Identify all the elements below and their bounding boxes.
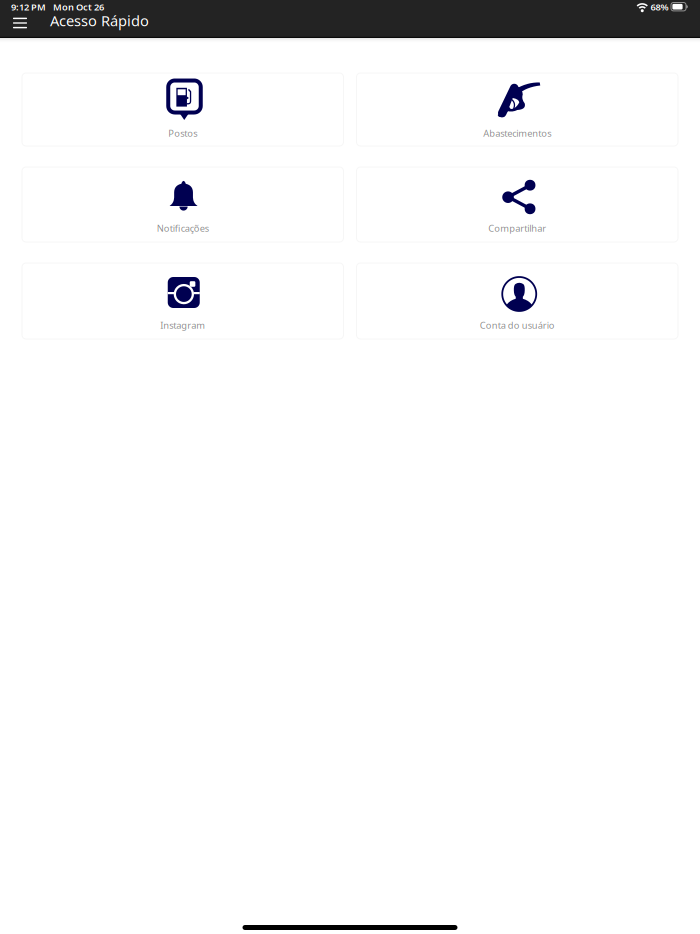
button[interactable]: Compartilhar [356, 167, 678, 242]
staticText: Notificações [157, 222, 209, 234]
staticText: Abastecimentos [483, 127, 551, 139]
button[interactable]: Instagram [22, 263, 343, 339]
staticText: Postos [168, 127, 197, 139]
staticText: 9:12 PM [11, 1, 46, 13]
staticText: Conta do usuário [480, 319, 555, 331]
button[interactable]: Postos [22, 73, 343, 146]
staticText: Mon Oct 26 [53, 1, 104, 13]
staticText: Compartilhar [488, 222, 546, 234]
staticText: Acesso Rápido [50, 11, 149, 30]
button[interactable]: Abastecimentos [356, 73, 678, 146]
staticText: Instagram [160, 319, 205, 331]
button[interactable]: Conta do usuário [356, 263, 678, 339]
button[interactable]: Notificações [22, 167, 343, 242]
button[interactable]: Menu [6, 14, 34, 32]
staticText: 68% [650, 1, 668, 13]
